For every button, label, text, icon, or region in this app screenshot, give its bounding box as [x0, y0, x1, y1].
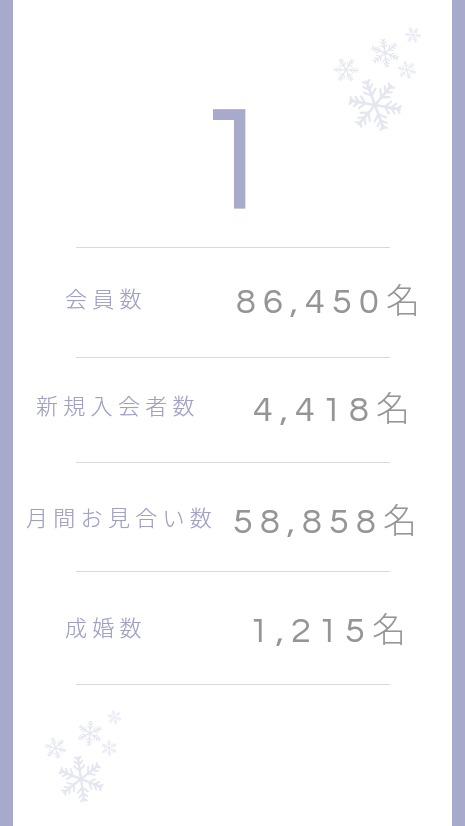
staticText: 1,215名 [249, 603, 407, 652]
staticText: 成婚数 [65, 610, 147, 642]
staticText: 月間お見合い数 [26, 500, 218, 532]
button[interactable] [0, 357, 465, 462]
staticText: 4,418名 [253, 382, 411, 431]
staticText: 新規入会者数 [36, 388, 200, 420]
staticText: 58,858名 [233, 494, 418, 543]
button[interactable] [0, 462, 465, 571]
button[interactable] [0, 247, 465, 357]
button[interactable] [0, 571, 465, 684]
staticText: 1 [186, 85, 282, 239]
staticText: 会員数 [65, 281, 147, 313]
staticText: 86,450名 [236, 274, 421, 323]
